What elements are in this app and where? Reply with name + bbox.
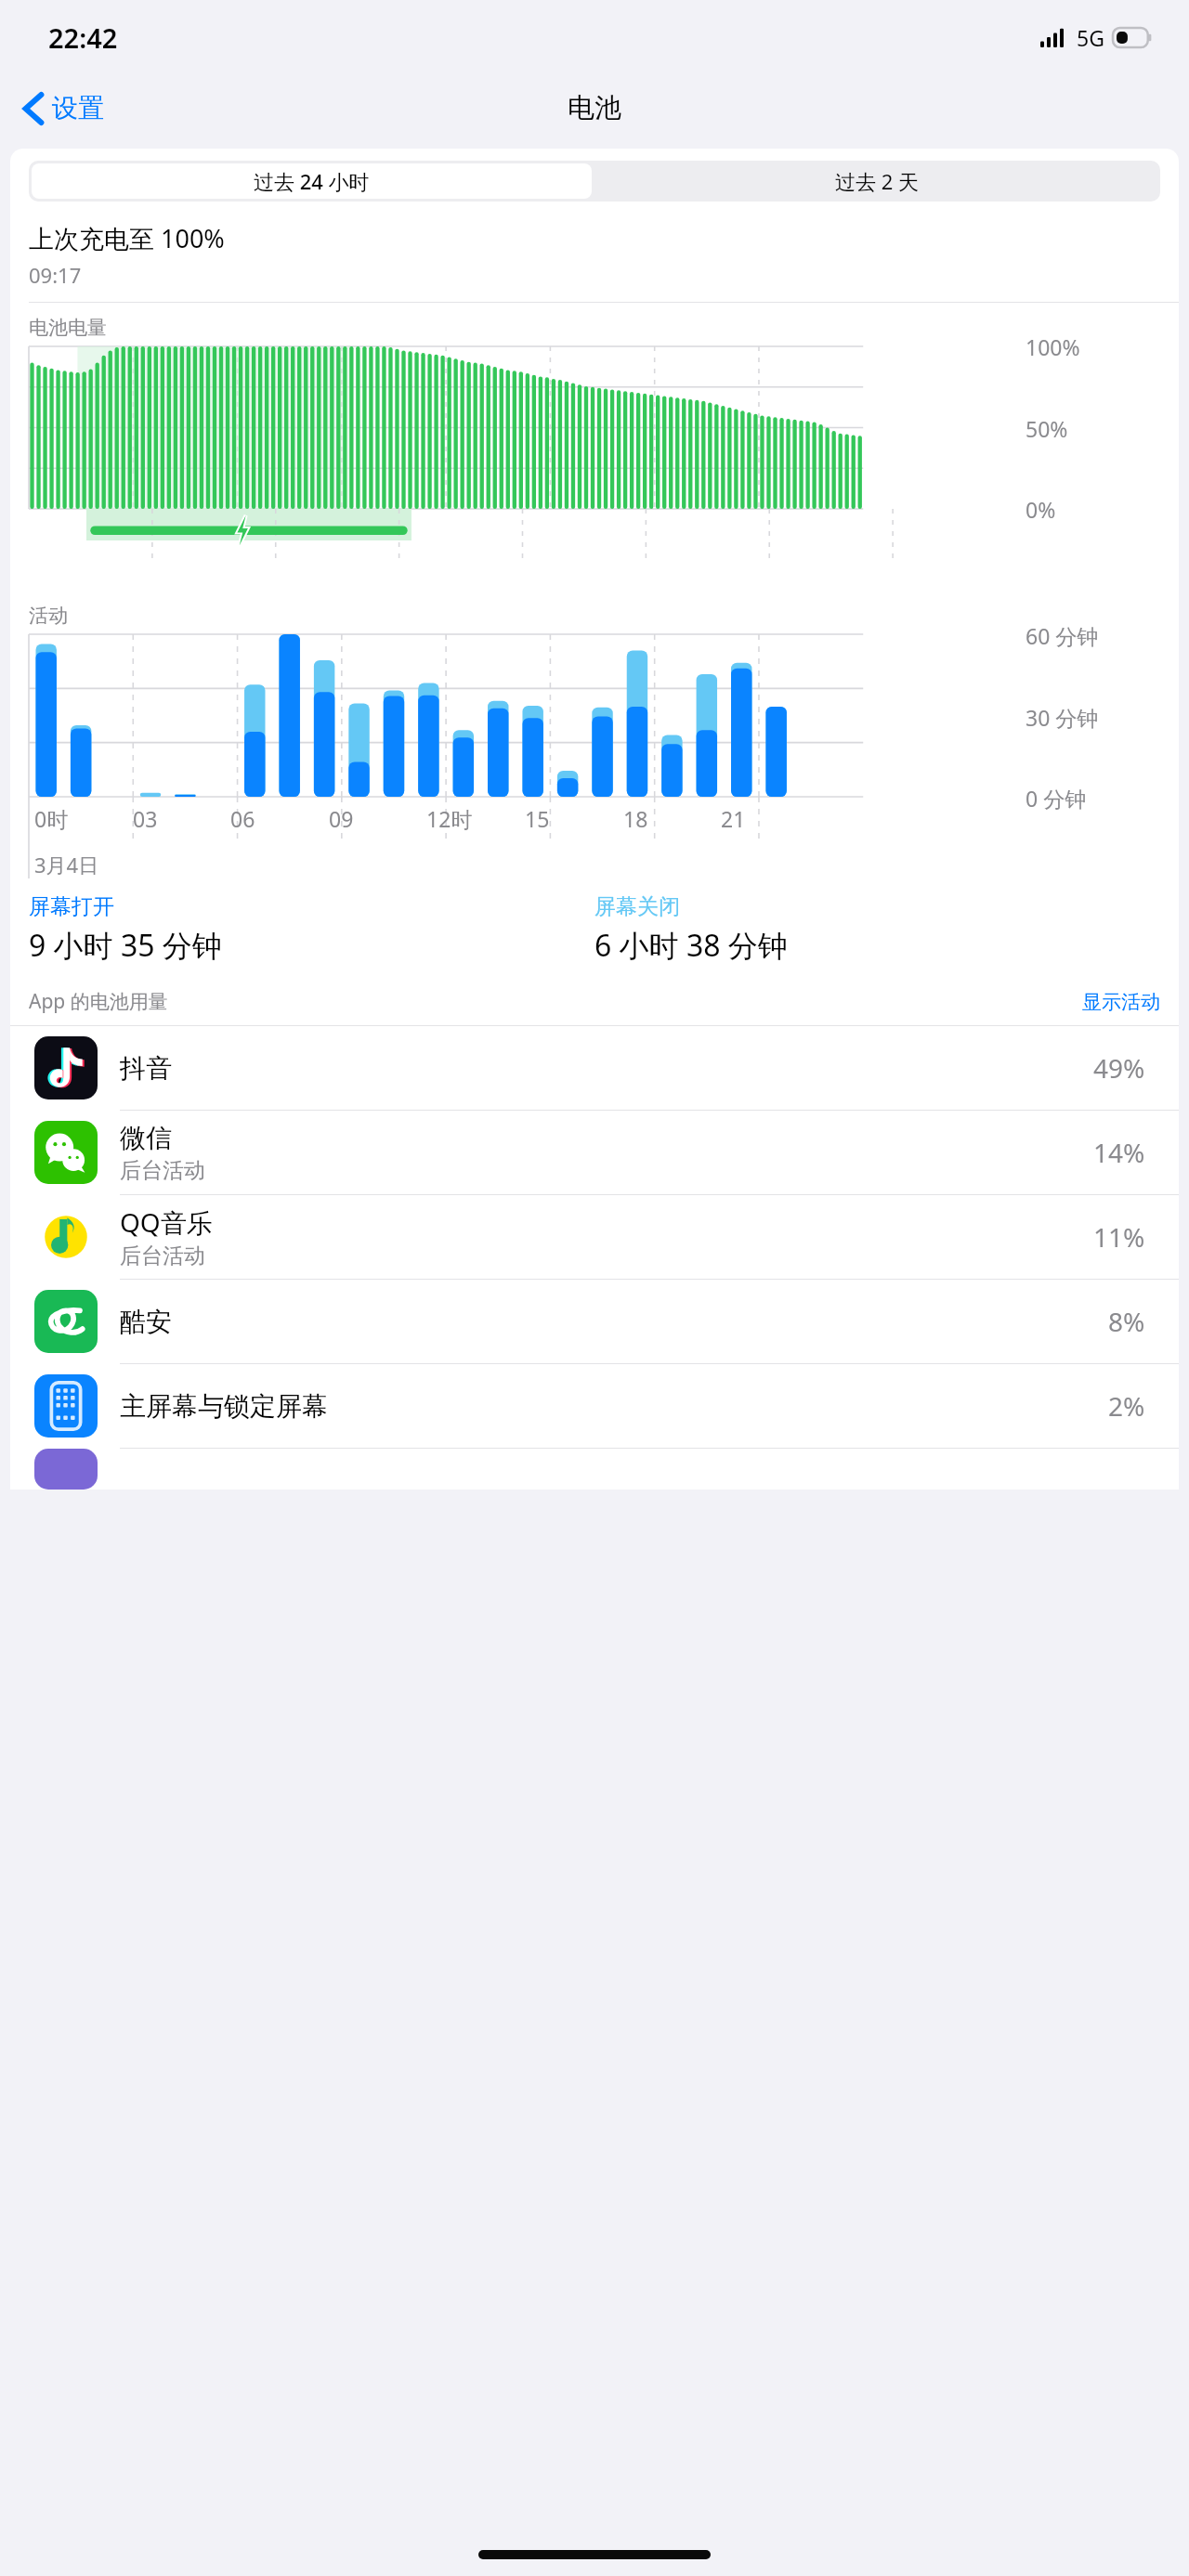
staticText: 活动	[29, 604, 68, 628]
staticText: 3月4日	[34, 851, 99, 878]
staticText: 屏幕打开	[29, 893, 114, 920]
staticText: 60 分钟	[1026, 621, 1099, 650]
staticText: 电池电量	[29, 316, 107, 340]
staticText: 主屏幕与锁定屏幕	[120, 1390, 328, 1423]
staticText: 30 分钟	[1026, 703, 1099, 732]
staticText: 酷安	[120, 1306, 172, 1338]
button[interactable]: 酷安	[10, 1280, 1179, 1363]
staticText: 设置	[52, 92, 104, 124]
staticText: 21	[721, 804, 746, 833]
staticText: 屏幕关闭	[594, 893, 680, 920]
button[interactable]	[10, 1449, 1179, 1490]
staticText: 18	[623, 804, 648, 833]
staticText: 显示活动	[1082, 990, 1160, 1014]
staticText: 微信	[120, 1122, 172, 1154]
staticText: 0 分钟	[1026, 784, 1087, 813]
staticText: QQ音乐	[120, 1204, 213, 1240]
button[interactable]: QQ音乐	[10, 1195, 1179, 1279]
button[interactable]: 微信	[10, 1111, 1179, 1194]
staticText: 后台活动	[120, 1242, 205, 1269]
staticText: 50%	[1026, 414, 1068, 443]
staticText: 100%	[1026, 332, 1080, 361]
staticText: 0%	[1026, 495, 1056, 524]
staticText: 上次充电至 100%	[29, 221, 225, 255]
button[interactable]: 显示活动	[1082, 990, 1160, 1014]
staticText: 49%	[1093, 1050, 1145, 1086]
staticText: 2%	[1108, 1388, 1145, 1424]
staticText: 过去 2 天	[835, 167, 920, 195]
button[interactable]: 过去 2 天	[594, 161, 1160, 202]
staticText: 15	[525, 804, 550, 833]
button[interactable]: 过去 24 小时	[32, 163, 592, 199]
button[interactable]: 设置	[0, 86, 117, 130]
staticText: 14%	[1093, 1135, 1145, 1170]
staticText: 电池	[568, 91, 621, 125]
staticText: 03	[133, 804, 158, 833]
staticText: 过去 24 小时	[254, 167, 370, 195]
staticText: 09:17	[29, 261, 82, 289]
button[interactable]: 主屏幕与锁定屏幕	[10, 1364, 1179, 1448]
button[interactable]: 抖音	[10, 1026, 1179, 1110]
staticText: 11%	[1093, 1219, 1145, 1255]
staticText: 5G	[1077, 23, 1104, 52]
staticText: 抖音	[120, 1052, 172, 1085]
staticText: 后台活动	[120, 1157, 205, 1184]
staticText: 06	[230, 804, 255, 833]
staticText: App 的电池用量	[29, 988, 168, 1015]
staticText: 9 小时 35 分钟	[29, 925, 222, 966]
staticText: 12时	[426, 804, 473, 833]
staticText: 0时	[34, 804, 69, 833]
staticText: 22:42	[48, 20, 118, 56]
staticText: 8%	[1108, 1304, 1145, 1339]
staticText: 09	[329, 804, 354, 833]
staticText: 6 小时 38 分钟	[594, 925, 788, 966]
